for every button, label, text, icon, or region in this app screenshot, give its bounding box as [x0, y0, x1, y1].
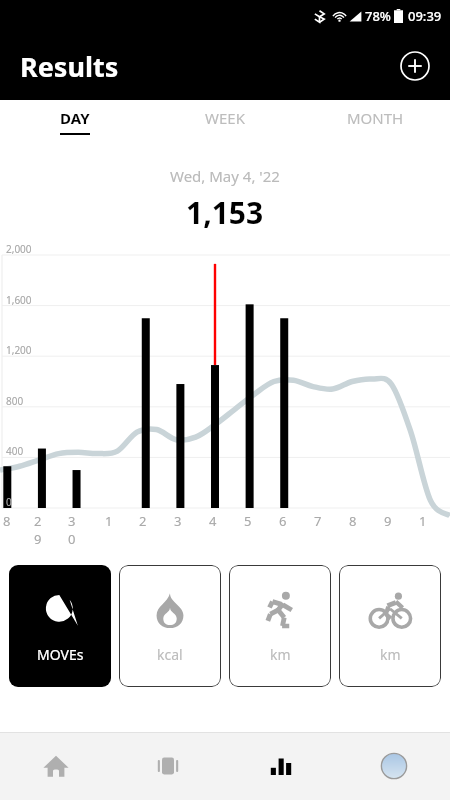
staticText: Wed, May 4, '22: [170, 166, 280, 186]
staticText: 1,200: [6, 343, 32, 357]
staticText: 78%: [365, 7, 391, 25]
staticText: km: [380, 645, 401, 664]
staticText: 1,153: [186, 192, 264, 233]
staticText: 4: [209, 512, 217, 530]
staticText: 1,600: [6, 293, 32, 307]
staticText: 1: [105, 512, 113, 530]
button[interactable]: km: [229, 565, 331, 687]
staticText: DAY: [60, 108, 90, 128]
staticText: 9: [384, 512, 392, 530]
staticText: 3: [174, 512, 182, 530]
staticText: MOVEs: [37, 645, 84, 664]
button[interactable]: Cards: [112, 732, 224, 800]
button[interactable]: Add: [398, 49, 432, 83]
staticText: 6: [279, 512, 287, 530]
staticText: WEEK: [205, 108, 245, 128]
button[interactable]: Profile: [337, 732, 450, 800]
staticText: 400: [6, 444, 24, 458]
staticText: 7: [314, 512, 322, 530]
staticText: 2,000: [6, 242, 32, 256]
button[interactable]: MONTH: [300, 100, 450, 144]
button[interactable]: WEEK: [150, 100, 300, 144]
button[interactable]: km: [339, 565, 441, 687]
staticText: 09:39: [408, 7, 442, 25]
button[interactable]: Home: [0, 732, 112, 800]
button[interactable]: DAY: [0, 100, 150, 144]
staticText: kcal: [157, 645, 183, 664]
staticText: 5: [244, 512, 252, 530]
button[interactable]: kcal: [119, 565, 221, 687]
staticText: km: [270, 645, 291, 664]
staticText: 0: [6, 495, 12, 509]
staticText: 8: [3, 512, 11, 530]
staticText: 2: [139, 512, 147, 530]
staticText: 29: [34, 512, 48, 548]
staticText: 1: [419, 512, 427, 530]
button[interactable]: MOVEs: [9, 565, 111, 687]
staticText: 8: [349, 512, 357, 530]
staticText: MONTH: [347, 108, 404, 128]
staticText: 800: [6, 394, 24, 408]
button[interactable]: Results: [224, 732, 337, 800]
staticText: Results: [20, 48, 119, 85]
staticText: 30: [68, 512, 82, 548]
